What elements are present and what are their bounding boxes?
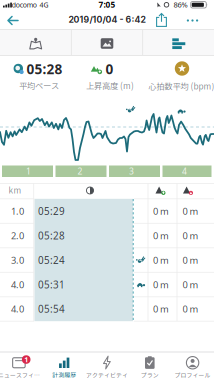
staticText: 0 m (153, 254, 169, 266)
staticText: 05:54 (38, 302, 65, 316)
staticText: 4 (182, 165, 187, 177)
staticText: 05:24 (38, 253, 65, 267)
button[interactable]: Photos (101, 38, 113, 49)
button[interactable]: Back (7, 16, 19, 25)
staticText: 1.0 (11, 205, 24, 217)
button[interactable]: 1 (0, 354, 45, 380)
button[interactable]: Map (29, 37, 42, 49)
staticText: プロフィール (175, 371, 211, 379)
staticText: 0 (105, 60, 113, 78)
button[interactable]: Splits (172, 38, 185, 49)
staticText: 心拍数平均 (bpm) (148, 80, 214, 92)
staticText: 2 (77, 165, 82, 177)
staticText: 計測履歴 (52, 371, 76, 379)
staticText: プラン (141, 371, 159, 379)
staticText: 7:05 (98, 0, 115, 10)
staticText: 4.0 (11, 278, 24, 291)
staticText: 05:28 (38, 229, 65, 242)
staticText: 0 m (182, 229, 198, 242)
staticText: 上昇高度 (m) (86, 79, 134, 91)
staticText: 0 m (182, 254, 198, 266)
staticText: km (8, 184, 21, 196)
staticText: 0 m (153, 278, 169, 291)
staticText: 05:29 (38, 204, 65, 218)
button[interactable]: More (186, 18, 199, 22)
staticText: 05:31 (38, 278, 65, 291)
button[interactable]: プロフィール (169, 354, 214, 380)
button[interactable]: 計測履歴 (41, 354, 88, 380)
staticText: 0 m (153, 303, 169, 315)
button[interactable]: アクティビティ (83, 354, 130, 380)
staticText: 1 (24, 355, 28, 364)
staticText: 0 m (182, 278, 198, 291)
staticText: 86% (173, 0, 187, 10)
staticText: 2019/10/04 - 6:42 (68, 14, 145, 25)
staticText: 0 m (153, 205, 169, 217)
staticText: 1 (26, 165, 31, 177)
button[interactable]: プラン (126, 354, 173, 380)
staticText: 3.0 (11, 254, 24, 266)
staticText: アクティビティ (86, 371, 128, 379)
staticText: 4G (39, 0, 48, 9)
staticText: 0 m (153, 229, 169, 242)
button[interactable]: Share (156, 13, 167, 27)
staticText: docomo (12, 0, 37, 9)
staticText: 0 m (182, 205, 198, 217)
staticText: 0 m (182, 303, 198, 315)
staticText: 05:28 (26, 60, 62, 78)
staticText: ニュースフィード (0, 371, 45, 379)
staticText: 2.0 (11, 229, 24, 242)
staticText: 平均ペース (19, 79, 59, 91)
staticText: 4.0 (11, 303, 24, 315)
staticText: 3 (129, 165, 134, 177)
